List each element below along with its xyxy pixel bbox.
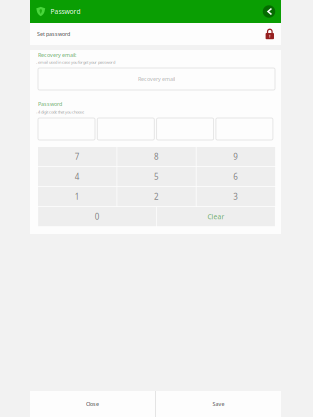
button[interactable]: 3 xyxy=(197,187,275,206)
staticText: 7 xyxy=(75,151,80,162)
staticText: 8 xyxy=(154,151,159,162)
button[interactable]: 7 xyxy=(38,147,116,166)
staticText: Clear xyxy=(207,212,224,221)
button[interactable]: Clear xyxy=(157,207,275,226)
button[interactable]: 4 xyxy=(38,167,116,186)
button[interactable]: 5 xyxy=(117,167,196,186)
staticText: 2 xyxy=(154,191,159,202)
staticText: 1 xyxy=(75,191,80,202)
staticText: Save xyxy=(212,400,224,408)
staticText: 6 xyxy=(233,171,238,182)
staticText: Recovery email: xyxy=(38,51,76,59)
button[interactable]: 6 xyxy=(197,167,275,186)
button[interactable]: Save xyxy=(156,391,281,417)
button[interactable]: 8 xyxy=(117,147,196,166)
button[interactable]: Close xyxy=(30,391,155,417)
button[interactable]: Back xyxy=(262,4,276,18)
staticText: 0 xyxy=(95,211,100,222)
staticText: 3 xyxy=(233,191,238,202)
button[interactable]: 9 xyxy=(197,147,275,166)
staticText: - 4 digit code that you choose xyxy=(36,109,84,115)
staticText: 5 xyxy=(154,171,159,182)
button[interactable]: 1 xyxy=(38,187,116,206)
staticText: 9 xyxy=(233,151,238,162)
staticText: Recovery email xyxy=(138,75,175,83)
button[interactable]: 2 xyxy=(117,187,196,206)
staticText: Password xyxy=(38,100,62,108)
staticText: 4 xyxy=(75,171,80,182)
staticText: Password xyxy=(50,7,80,16)
staticText: - email used in case you forget your pas… xyxy=(36,60,115,65)
staticText: Set password xyxy=(37,30,70,38)
button[interactable]: 0 xyxy=(38,207,156,226)
staticText: Close xyxy=(86,400,99,408)
